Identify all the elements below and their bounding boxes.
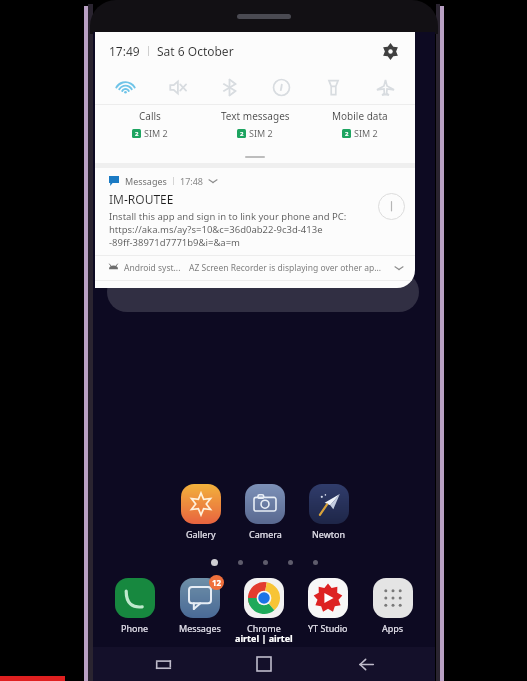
button[interactable]: Location <box>259 70 303 104</box>
button[interactable]: Mobile data <box>310 109 410 139</box>
staticText: SIM 2 <box>354 127 378 139</box>
staticText: Android syst... <box>124 262 181 274</box>
button[interactable]: Android syst... <box>95 256 415 280</box>
staticText: -89ff-38971d7771b9&i=&a=m <box>109 236 240 249</box>
button[interactable]: Recents <box>131 647 195 681</box>
button[interactable]: Calls <box>100 109 200 139</box>
staticText: Mobile data <box>332 109 388 123</box>
button[interactable]: 12 <box>172 578 228 634</box>
button[interactable]: Apps <box>365 578 421 634</box>
button[interactable]: Gallery <box>173 484 229 540</box>
staticText: 17:49 <box>109 43 140 59</box>
staticText: airtel | airtel <box>235 632 293 644</box>
button[interactable]: Sound off <box>155 70 199 104</box>
staticText: Calls <box>139 109 161 123</box>
button[interactable]: Bluetooth <box>207 70 251 104</box>
staticText: Gallery <box>186 528 216 540</box>
staticText: IM-ROUTEE <box>109 191 174 207</box>
staticText: Messages <box>179 622 221 634</box>
staticText: Chrome <box>247 622 281 634</box>
button[interactable]: Flashlight <box>311 70 355 104</box>
button[interactable]: Flight mode <box>363 70 407 104</box>
staticText: 2 <box>240 130 244 138</box>
button[interactable]: Messages <box>95 168 415 255</box>
button[interactable]: Text messages <box>205 109 305 139</box>
staticText: Phone <box>121 622 149 634</box>
staticText: Messages <box>125 175 167 187</box>
staticText: 17:48 <box>180 175 204 187</box>
button[interactable]: Phone <box>107 578 163 634</box>
staticText: SIM 2 <box>249 127 273 139</box>
staticText: Text messages <box>221 109 290 123</box>
staticText: SIM 2 <box>144 127 168 139</box>
staticText: 2 <box>135 130 139 138</box>
staticText: 2 <box>345 130 349 138</box>
button[interactable]: Back <box>334 647 398 681</box>
staticText: https://aka.ms/ay?s=10&c=36d0ab22-9c3d-4… <box>109 223 323 236</box>
button[interactable]: Newton <box>301 484 357 540</box>
button[interactable]: Camera <box>237 484 293 540</box>
staticText: Install this app and sign in to link you… <box>109 210 347 223</box>
button[interactable]: Home <box>232 647 296 681</box>
staticText: Apps <box>382 622 404 634</box>
button[interactable]: Wi-Fi <box>103 70 147 104</box>
button[interactable]: YT Studio <box>300 578 356 634</box>
staticText: Sat 6 October <box>157 43 234 59</box>
staticText: 12 <box>212 577 222 588</box>
staticText: YT Studio <box>308 622 348 634</box>
button[interactable]: Chrome <box>236 578 292 634</box>
staticText: AZ Screen Recorder is displaying over ot… <box>189 262 382 274</box>
button[interactable]: Settings <box>377 38 403 64</box>
button[interactable]: Notification options <box>378 193 405 220</box>
staticText: Newton <box>312 528 346 540</box>
staticText: Camera <box>249 528 282 540</box>
